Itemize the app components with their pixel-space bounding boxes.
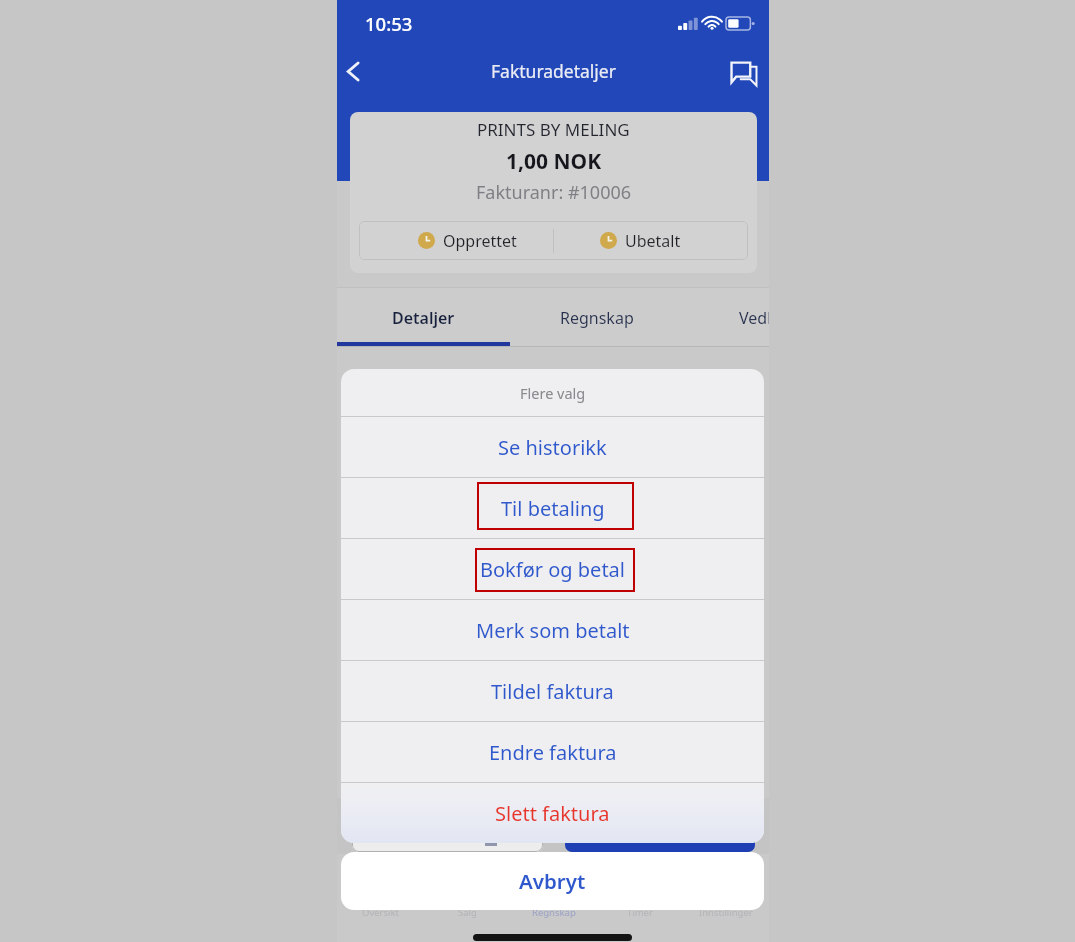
button[interactable]: Back — [332, 50, 374, 92]
staticText: PRINTS BY MELING — [477, 118, 630, 141]
staticText: Regnskap — [532, 906, 576, 919]
button[interactable]: Regnskap — [511, 906, 597, 922]
button[interactable]: Messages — [723, 52, 765, 94]
button[interactable]: Vedlegg — [683, 288, 769, 347]
staticText: Detaljer — [392, 307, 455, 329]
button[interactable]: Innstillinger — [683, 906, 769, 922]
button[interactable]: Merk som betalt — [341, 600, 764, 660]
staticText: Til betaling — [501, 495, 605, 522]
button[interactable]: Opprettet — [381, 221, 553, 260]
button[interactable] — [565, 808, 755, 852]
staticText: Oversikt — [362, 906, 400, 919]
button[interactable] — [352, 808, 543, 852]
button[interactable]: Se historikk — [341, 417, 764, 477]
staticText: Se historikk — [498, 434, 607, 461]
staticText: Vedlegg — [739, 307, 769, 329]
button[interactable]: Tildel faktura — [341, 661, 764, 721]
button[interactable]: Regnskap — [510, 288, 683, 347]
button[interactable]: Ubetalt — [554, 221, 726, 260]
button[interactable]: Oversikt — [337, 906, 424, 922]
button[interactable]: Bokfør og betal — [341, 539, 764, 599]
button[interactable]: Salg — [424, 906, 511, 922]
staticText: Innstillinger — [699, 906, 753, 919]
button[interactable]: Til betaling — [341, 478, 764, 538]
staticText: 10:53 — [365, 11, 413, 36]
staticText: Regnskap — [560, 307, 634, 329]
staticText: Fakturadetaljer — [491, 59, 616, 83]
staticText: Endre faktura — [489, 739, 617, 766]
staticText: Merk som betalt — [476, 617, 630, 644]
staticText: Avbryt — [519, 867, 586, 895]
staticText: Tildel faktura — [491, 678, 614, 705]
button[interactable]: Detaljer — [337, 288, 510, 347]
staticText: Opprettet — [443, 230, 517, 252]
staticText: Flere valg — [520, 383, 586, 403]
staticText: Ubetalt — [625, 230, 681, 252]
staticText: Timer — [627, 906, 653, 919]
staticText: Bokfør og betal — [480, 556, 625, 583]
staticText: Salg — [458, 906, 477, 919]
staticText: Fakturanr: #10006 — [476, 180, 632, 205]
staticText: Slett faktura — [495, 800, 610, 827]
button[interactable]: Avbryt — [341, 852, 764, 910]
button[interactable]: Slett faktura — [341, 783, 764, 843]
staticText: 1,00 NOK — [506, 147, 602, 176]
button[interactable]: Endre faktura — [341, 722, 764, 782]
button[interactable]: Timer — [597, 906, 683, 922]
